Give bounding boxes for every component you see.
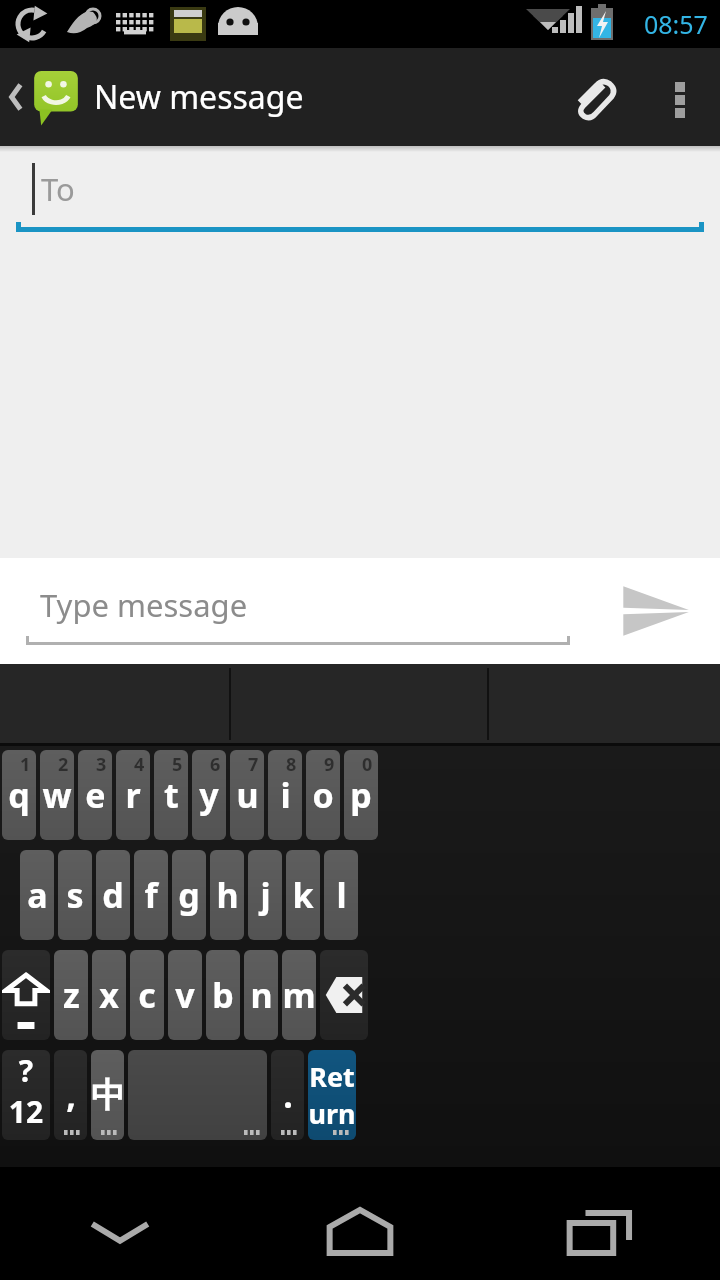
button[interactable]: 中 (91, 1050, 124, 1140)
staticText: c (138, 972, 156, 1018)
button[interactable]: l (324, 850, 358, 940)
staticText: y (199, 772, 219, 818)
staticText: i (280, 772, 291, 818)
button[interactable]: r (116, 750, 150, 840)
button[interactable]: o (306, 750, 340, 840)
staticText: 2 (58, 752, 69, 777)
staticText: 08:57 (644, 7, 708, 41)
staticText: j (260, 872, 271, 918)
button[interactable]: Return (308, 1050, 356, 1140)
staticText: 1 (20, 752, 31, 777)
button[interactable]: Recent apps (480, 1184, 720, 1280)
button[interactable]: Home (240, 1184, 480, 1280)
staticText: a (27, 872, 48, 918)
button[interactable]: w (40, 750, 74, 840)
button[interactable]: Hide keyboard (0, 1184, 240, 1280)
button[interactable]: b (206, 950, 240, 1040)
button[interactable]: Space (128, 1050, 267, 1140)
button[interactable]: e (78, 750, 112, 840)
staticText: 中 (91, 1074, 124, 1117)
staticText: . (283, 1072, 293, 1118)
staticText: 6 (210, 752, 221, 777)
staticText: u (236, 772, 259, 818)
staticText: d (102, 872, 124, 918)
button[interactable]: h (210, 850, 244, 940)
button[interactable]: s (58, 850, 92, 940)
button[interactable]: x (92, 950, 126, 1040)
button[interactable]: g (172, 850, 206, 940)
button[interactable]: . (271, 1050, 304, 1140)
staticText: q (8, 772, 30, 818)
staticText: 9 (324, 752, 335, 777)
staticText: b (212, 972, 234, 1018)
button[interactable]: To (0, 146, 720, 231)
button[interactable]: Shift (2, 950, 50, 1040)
button[interactable]: k (286, 850, 320, 940)
staticText: Type message (40, 584, 248, 626)
button[interactable]: j (248, 850, 282, 940)
button[interactable]: ?123 (2, 1050, 50, 1140)
button[interactable]: a (20, 850, 54, 940)
staticText: s (66, 872, 84, 918)
button[interactable]: i (268, 750, 302, 840)
button[interactable]: More options (640, 48, 720, 146)
button[interactable]: c (130, 950, 164, 1040)
button[interactable]: f (134, 850, 168, 940)
button[interactable]: , (54, 1050, 87, 1140)
staticText: , (66, 1072, 76, 1118)
staticText: h (216, 872, 239, 918)
button[interactable]: Send (590, 558, 720, 664)
staticText: x (99, 972, 119, 1018)
button[interactable]: Delete (320, 950, 368, 1040)
staticText: ?123 (2, 1050, 50, 1140)
button[interactable]: Attach (544, 48, 640, 146)
staticText: 8 (286, 752, 297, 777)
staticText: To (41, 168, 75, 210)
staticText: v (175, 972, 195, 1018)
button[interactable]: u (230, 750, 264, 840)
staticText: m (282, 972, 316, 1018)
staticText: 3 (96, 752, 107, 777)
staticText: n (250, 972, 273, 1018)
button[interactable]: v (168, 950, 202, 1040)
staticText: 0 (362, 752, 373, 777)
staticText: t (164, 772, 179, 818)
staticText: k (292, 872, 314, 918)
staticText: 4 (134, 752, 145, 777)
staticText: g (178, 872, 200, 918)
button[interactable]: p (344, 750, 378, 840)
staticText: New message (94, 75, 304, 119)
staticText: 5 (172, 752, 183, 777)
staticText: Return (308, 1058, 356, 1132)
button[interactable]: Type message (0, 558, 590, 664)
staticText: o (312, 772, 334, 818)
staticText: p (350, 772, 372, 818)
staticText: 7 (248, 752, 259, 777)
staticText: f (144, 872, 158, 918)
button[interactable]: z (54, 950, 88, 1040)
button[interactable]: n (244, 950, 278, 1040)
button[interactable]: t (154, 750, 188, 840)
staticText: r (125, 772, 141, 818)
staticText: w (42, 772, 72, 818)
button[interactable]: q (2, 750, 36, 840)
staticText: z (63, 972, 80, 1018)
staticText: e (85, 772, 106, 818)
button[interactable]: New message (0, 48, 310, 146)
button[interactable]: m (282, 950, 316, 1040)
button[interactable]: d (96, 850, 130, 940)
staticText: l (336, 872, 347, 918)
button[interactable]: y (192, 750, 226, 840)
